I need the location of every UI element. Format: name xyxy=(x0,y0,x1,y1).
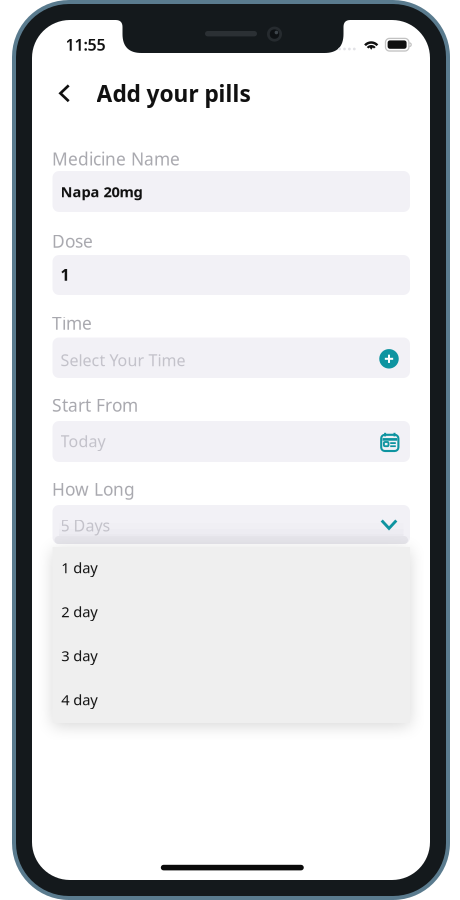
staticText: Today xyxy=(60,430,105,452)
staticText: 11:55 xyxy=(65,34,105,55)
staticText: Napa 20mg xyxy=(60,182,142,201)
staticText: Medicine Name xyxy=(52,147,180,170)
staticText: 5 Days xyxy=(60,515,110,536)
staticText: 1 day xyxy=(61,558,97,577)
staticText: Add your pills xyxy=(97,78,251,108)
button[interactable]: Choose duration xyxy=(369,504,409,544)
button[interactable]: Pick start date xyxy=(370,421,410,461)
staticText: 4 day xyxy=(61,690,97,709)
staticText: How Long xyxy=(52,477,135,500)
staticText: 3 day xyxy=(61,646,97,665)
staticText: Time xyxy=(52,312,92,335)
button[interactable]: 2 day xyxy=(52,591,410,635)
staticText: Start From xyxy=(52,393,138,416)
staticText: 2 day xyxy=(61,602,97,621)
staticText: Dose xyxy=(52,229,93,252)
staticText: Select Your Time xyxy=(60,349,185,371)
button[interactable]: Add time xyxy=(369,339,409,379)
button[interactable]: 1 day xyxy=(52,547,410,591)
button[interactable]: 3 day xyxy=(52,635,410,679)
button[interactable]: Back xyxy=(44,72,86,114)
button[interactable]: 4 day xyxy=(52,679,410,723)
staticText: 1 xyxy=(60,264,69,285)
